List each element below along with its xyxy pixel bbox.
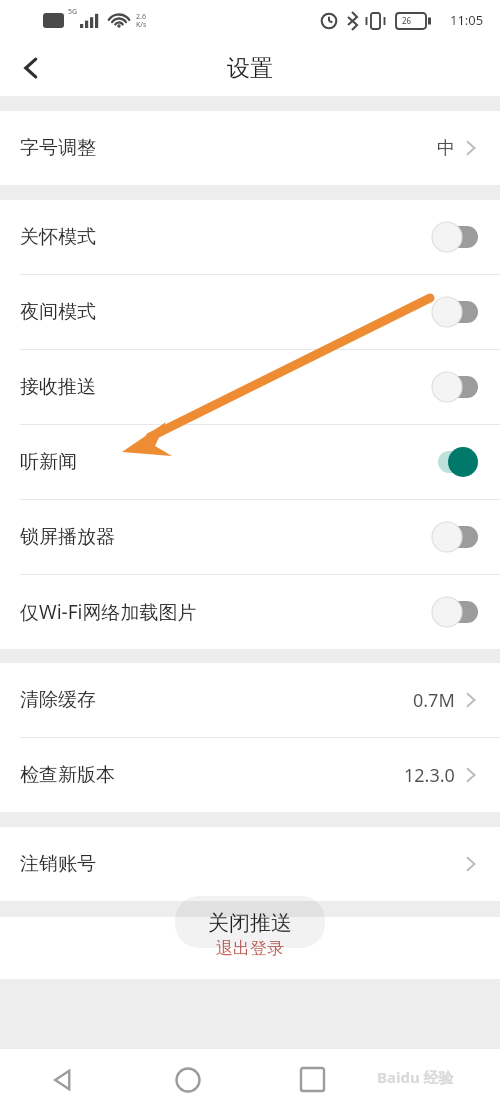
button[interactable]: 字号调整 [0, 111, 500, 185]
staticText: Baidu 经验 [377, 1067, 454, 1087]
button[interactable]: 退出登录 [0, 917, 500, 979]
button[interactable]: 关怀模式 [0, 200, 500, 274]
staticText: 2.6 K/s [136, 12, 147, 29]
button[interactable]: 听新闻 [0, 425, 500, 499]
staticText: 检查新版本 [20, 763, 115, 787]
button[interactable]: 清除缓存 [0, 663, 500, 737]
button[interactable]: 最近任务 [250, 1048, 375, 1111]
button[interactable]: 检查新版本 [0, 738, 500, 812]
button[interactable]: 返回 [6, 43, 56, 93]
staticText: 夜间模式 [20, 300, 96, 324]
staticText: 26 [402, 15, 412, 26]
staticText: 退出登录 [216, 938, 284, 959]
staticText: 关闭推送 [208, 910, 292, 936]
staticText: 接收推送 [20, 375, 96, 399]
button[interactable]: 注销账号 [0, 827, 500, 901]
staticText: 注销账号 [20, 852, 96, 876]
staticText: 设置 [227, 54, 273, 83]
staticText: 11:05 [450, 11, 484, 29]
staticText: 清除缓存 [20, 688, 96, 712]
staticText: 字号调整 [20, 136, 96, 160]
staticText: 锁屏播放器 [20, 525, 115, 549]
button[interactable]: 夜间模式 [0, 275, 500, 349]
button[interactable]: 锁屏播放器 [0, 500, 500, 574]
staticText: 中 [437, 137, 455, 160]
staticText: 关怀模式 [20, 225, 96, 249]
staticText: 听新闻 [20, 450, 77, 474]
button[interactable]: 返回 [0, 1048, 125, 1111]
staticText: 仅Wi-Fi网络加载图片 [20, 599, 197, 625]
button[interactable]: 接收推送 [0, 350, 500, 424]
staticText: 5G [68, 7, 78, 17]
button[interactable]: 主页 [125, 1048, 250, 1111]
button[interactable]: 仅Wi-Fi网络加载图片 [0, 575, 500, 649]
staticText: 12.3.0 [404, 763, 455, 788]
staticText: 0.7M [413, 688, 455, 713]
